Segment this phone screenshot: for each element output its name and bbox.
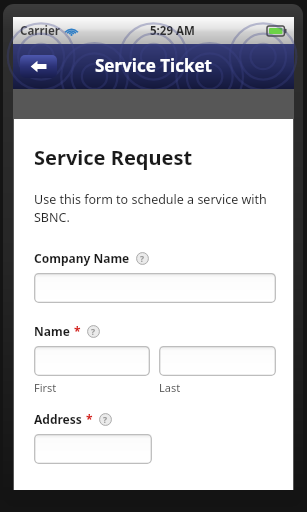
staticText: Use this form to schedule a service with…: [34, 191, 267, 226]
staticText: First: [34, 380, 57, 395]
staticText: Company Name: [34, 250, 130, 266]
staticText: Last: [159, 380, 181, 395]
staticText: *: [74, 323, 81, 339]
staticText: ?: [140, 253, 145, 265]
staticText: 5:29 AM: [150, 23, 195, 39]
button[interactable]: Back: [20, 55, 57, 78]
staticText: Service Request: [34, 144, 193, 171]
button[interactable]: Help about Name: [87, 325, 100, 338]
button[interactable]: [159, 346, 276, 376]
staticText: Address: [34, 411, 82, 427]
button[interactable]: [34, 346, 150, 376]
button[interactable]: Help about Company Name: [136, 252, 149, 265]
staticText: *: [86, 411, 93, 427]
staticText: Name: [34, 323, 70, 339]
button[interactable]: [34, 434, 152, 464]
button[interactable]: [34, 273, 276, 303]
staticText: Carrier: [20, 23, 60, 39]
staticText: ?: [91, 326, 96, 338]
staticText: ?: [103, 414, 108, 426]
staticText: Service Ticket: [95, 54, 212, 77]
button[interactable]: Help about Address: [99, 413, 112, 426]
